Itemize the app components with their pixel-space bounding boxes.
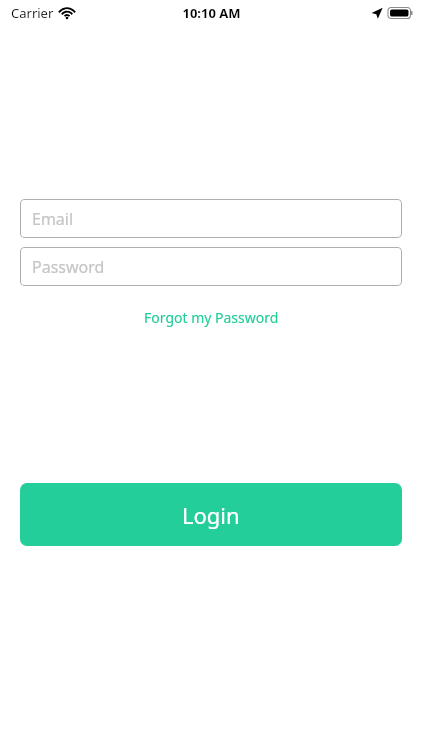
other: Battery full bbox=[388, 7, 413, 19]
button[interactable]: Forgot my Password bbox=[138, 305, 285, 330]
staticText: Forgot my Password bbox=[144, 308, 279, 327]
staticText: Login bbox=[182, 500, 240, 530]
other: Wi-Fi signal bbox=[59, 7, 75, 19]
staticText: Password bbox=[32, 256, 105, 278]
staticText: 10:10 AM bbox=[182, 4, 241, 22]
staticText: Carrier bbox=[11, 4, 54, 22]
button[interactable]: Login bbox=[20, 483, 402, 546]
other: Location active bbox=[371, 7, 383, 19]
button[interactable]: Email bbox=[20, 199, 402, 238]
staticText: Email bbox=[32, 208, 74, 230]
button[interactable]: Password bbox=[20, 247, 402, 286]
